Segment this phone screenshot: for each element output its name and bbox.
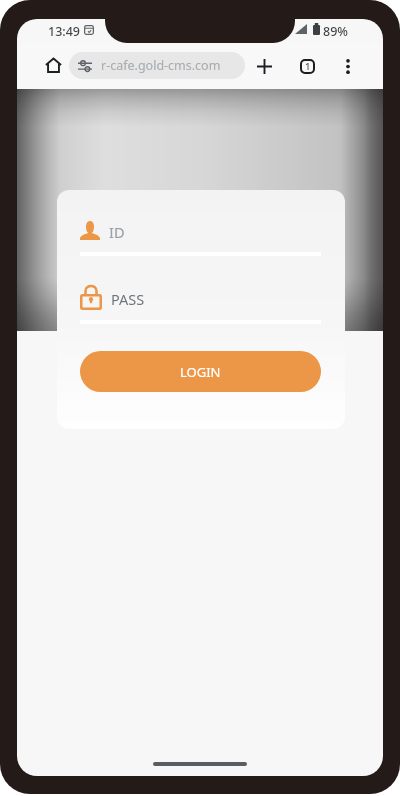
button[interactable]: LOGIN [80,351,321,392]
button[interactable]: r-cafe.gold-cms.com [69,52,245,79]
button[interactable]: More options [334,52,362,80]
staticText: 13:49 [48,23,81,40]
button[interactable]: Home [37,49,69,81]
staticText: PASS [111,289,145,309]
button[interactable]: New tab [248,50,280,82]
staticText: ID [109,222,125,242]
staticText: r-cafe.gold-cms.com [101,57,221,74]
staticText: 1 [305,60,311,73]
staticText: LOGIN [180,363,221,381]
button[interactable]: Tabs [293,52,321,80]
staticText: 89% [323,23,348,40]
